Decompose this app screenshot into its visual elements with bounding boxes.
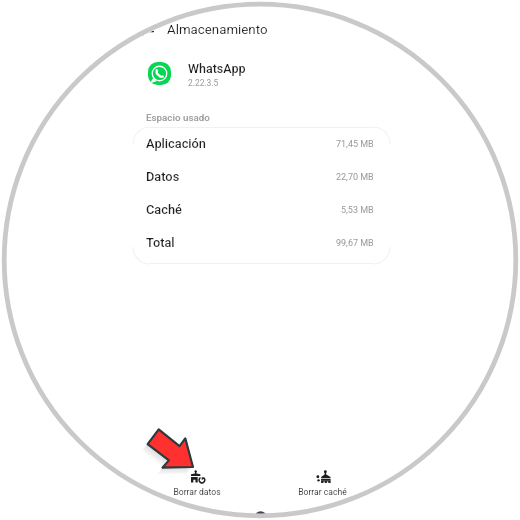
staticText: 71,45 MB [336,139,374,150]
staticText: Espacio usado [146,112,210,123]
button[interactable]: Datos [146,169,374,202]
button[interactable]: Caché [146,202,374,235]
staticText: Datos [146,169,180,184]
staticText: Caché [146,202,182,217]
staticText: WhatsApp [188,61,246,76]
button[interactable]: Borrar caché [289,470,355,497]
button[interactable]: Borrar datos [164,470,230,497]
button[interactable]: Aplicación [146,136,374,169]
staticText: Aplicación [146,136,206,151]
staticText: 22,70 MB [336,172,374,183]
staticText: Total [146,235,175,250]
staticText: 99,67 MB [336,238,374,249]
staticText: Borrar datos [173,487,221,497]
staticText: Borrar caché [298,487,347,497]
button[interactable]: Back [127,13,163,49]
button[interactable]: Total [146,235,374,268]
staticText: 2.22.3.5 [188,78,219,88]
staticText: Almacenamiento [167,22,268,38]
staticText: 5,53 MB [341,205,374,216]
